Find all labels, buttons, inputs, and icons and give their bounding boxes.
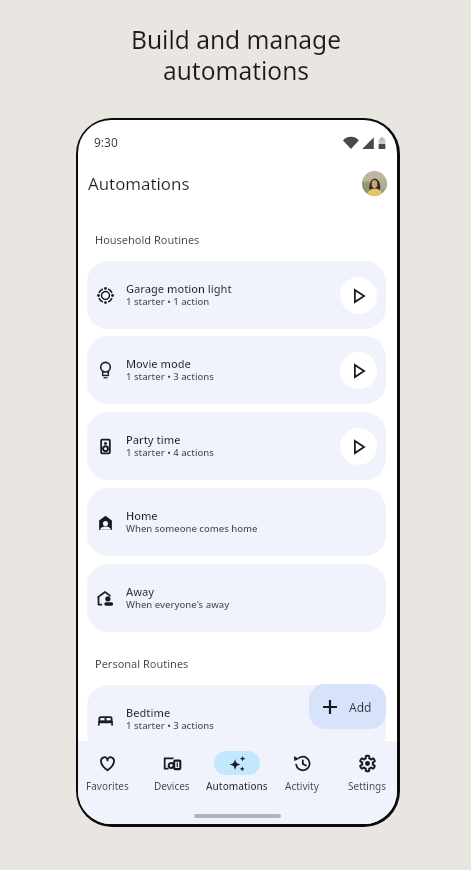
staticText: Home	[126, 508, 158, 523]
button[interactable]: Home	[87, 488, 386, 556]
staticText: Devices	[154, 779, 190, 793]
staticText: Add	[349, 699, 372, 715]
staticText: Settings	[348, 779, 387, 793]
button[interactable]: Favorites	[78, 751, 142, 793]
staticText: 1 starter • 3 actions	[126, 719, 214, 732]
staticText: Automations	[88, 172, 190, 195]
button[interactable]: Activity	[267, 751, 337, 793]
staticText: Household Routines	[95, 232, 200, 247]
staticText: Favorites	[86, 779, 129, 793]
button[interactable]: Run routine	[340, 352, 377, 389]
staticText: Garage motion light	[126, 281, 232, 296]
staticText: Build and manage automations	[131, 23, 341, 87]
staticText: Bedtime	[126, 705, 171, 720]
button[interactable]: Automations	[202, 751, 272, 793]
staticText: 9:30	[94, 134, 118, 150]
button[interactable]: Bedtime	[87, 685, 386, 753]
button[interactable]: Party time	[87, 412, 386, 480]
staticText: When someone comes home	[126, 522, 258, 535]
staticText: Activity	[285, 779, 319, 793]
button[interactable]: Run routine	[340, 277, 377, 314]
staticText: When everyone's away	[126, 598, 230, 611]
button[interactable]: Settings	[332, 751, 397, 793]
staticText: Party time	[126, 432, 181, 447]
button[interactable]: Garage motion light	[87, 261, 386, 329]
staticText: Away	[126, 584, 155, 599]
staticText: 1 starter • 4 actions	[126, 446, 214, 459]
button[interactable]: Movie mode	[87, 336, 386, 404]
staticText: Automations	[206, 779, 268, 793]
staticText: 1 starter • 1 action	[126, 295, 210, 308]
button[interactable]: Add	[309, 684, 386, 729]
staticText: Personal Routines	[95, 656, 189, 671]
staticText: Movie mode	[126, 356, 191, 371]
button[interactable]: Away	[87, 564, 386, 632]
staticText: 1 starter • 3 actions	[126, 370, 214, 383]
button[interactable]: Devices	[137, 751, 207, 793]
button[interactable]: Account	[362, 171, 387, 196]
button[interactable]: Run routine	[340, 428, 377, 465]
